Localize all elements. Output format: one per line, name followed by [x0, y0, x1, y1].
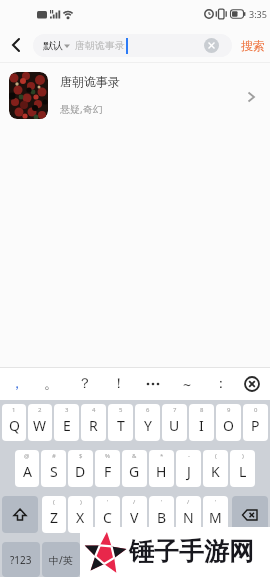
staticText: J — [187, 462, 191, 481]
staticText: % — [105, 452, 110, 460]
staticText: W — [33, 416, 47, 435]
button[interactable]: 搜索 — [241, 38, 265, 53]
staticText: 4 — [92, 406, 96, 414]
staticText: 0 — [254, 406, 258, 414]
button[interactable] — [82, 542, 228, 577]
button[interactable]: - — [176, 450, 201, 487]
staticText: $ — [79, 452, 83, 460]
button[interactable]: % — [95, 450, 120, 487]
staticText: / — [133, 498, 136, 506]
button[interactable]: 9 — [216, 404, 241, 441]
staticText: E — [63, 416, 71, 435]
staticText: U — [169, 416, 180, 435]
button[interactable] — [204, 38, 219, 53]
button[interactable]: / — [122, 496, 147, 533]
button[interactable]: ) — [230, 450, 255, 487]
staticText: O — [223, 416, 234, 435]
staticText: 唐朝诡事录 — [75, 39, 125, 52]
button[interactable]: * — [149, 450, 174, 487]
staticText: 锤子手游网 — [129, 536, 254, 567]
button[interactable]: ' — [149, 496, 174, 533]
staticText: 8 — [200, 406, 204, 414]
button[interactable]: ) — [68, 496, 93, 533]
button[interactable]: 8 — [189, 404, 214, 441]
button[interactable]: 默认 — [33, 34, 232, 57]
staticText: 唐朝诡事录 — [60, 74, 120, 89]
button[interactable]: 唐朝诡事录 — [0, 62, 270, 142]
button[interactable]: & — [122, 450, 147, 487]
button[interactable]: ？ — [68, 368, 102, 400]
button[interactable]: ： — [204, 368, 238, 400]
button[interactable] — [2, 496, 38, 533]
button[interactable]: $ — [68, 450, 93, 487]
staticText: T — [117, 416, 125, 435]
button[interactable]: 4 — [81, 404, 106, 441]
button[interactable]: 1 — [2, 404, 26, 441]
staticText: D — [75, 462, 86, 481]
staticText: 3 — [65, 406, 69, 414]
button[interactable]: @ — [15, 450, 39, 487]
button[interactable]: ！ — [102, 368, 136, 400]
staticText: M — [209, 508, 222, 527]
staticText: ？ — [78, 375, 92, 393]
button[interactable]: ~ — [170, 368, 204, 400]
staticText: X — [76, 508, 85, 527]
button[interactable] — [232, 496, 268, 533]
staticText: G — [129, 462, 140, 481]
staticText: ： — [214, 375, 228, 393]
button[interactable]: ， — [0, 368, 34, 400]
staticText: ' — [215, 498, 217, 506]
staticText: R — [89, 416, 98, 435]
button[interactable]: ( — [203, 450, 228, 487]
button[interactable] — [230, 542, 268, 577]
staticText: / — [187, 498, 190, 506]
staticText: N — [183, 508, 194, 527]
staticText: & — [132, 452, 137, 460]
staticText: ~ — [183, 375, 192, 394]
staticText: Y — [144, 416, 152, 435]
staticText: - — [188, 452, 190, 460]
button[interactable]: ' — [95, 496, 120, 533]
staticText: 。 — [44, 375, 58, 393]
staticText: K — [211, 462, 220, 481]
staticText: 6 — [146, 406, 150, 414]
staticText: V — [130, 508, 139, 527]
staticText: ?123 — [10, 553, 32, 567]
button[interactable]: 0 — [243, 404, 268, 441]
staticText: C — [103, 508, 112, 527]
staticText: 1 — [12, 406, 16, 414]
button[interactable]: / — [176, 496, 201, 533]
staticText: H — [156, 462, 167, 481]
button[interactable]: 3 — [54, 404, 79, 441]
staticText: B — [157, 508, 167, 527]
staticText: 9 — [227, 406, 231, 414]
button[interactable]: 7 — [162, 404, 187, 441]
button[interactable] — [4, 33, 28, 57]
staticText: ！ — [112, 375, 126, 393]
button[interactable]: 2 — [28, 404, 52, 441]
staticText: S — [50, 462, 58, 481]
staticText: 7 — [173, 406, 177, 414]
staticText: ， — [10, 375, 24, 393]
button[interactable]: ?123 — [2, 542, 40, 577]
staticText: Q — [9, 416, 20, 435]
button[interactable] — [244, 376, 260, 392]
staticText: 悬疑,奇幻 — [60, 102, 103, 116]
button[interactable]: 。 — [34, 368, 68, 400]
staticText: 5 — [119, 406, 123, 414]
staticText: 中/英 — [49, 553, 73, 567]
button[interactable]: 6 — [135, 404, 160, 441]
button[interactable]: ' — [203, 496, 228, 533]
button[interactable]: 中/英 — [42, 542, 80, 577]
staticText: ) — [80, 498, 82, 506]
staticText: @ — [24, 452, 30, 460]
button[interactable]: 5 — [108, 404, 133, 441]
staticText: 3:35 — [249, 8, 267, 20]
button[interactable]: ( — [42, 496, 66, 533]
staticText: ' — [107, 498, 109, 506]
button[interactable]: # — [41, 450, 66, 487]
staticText: Z — [50, 508, 59, 527]
button[interactable] — [136, 368, 170, 400]
staticText: 2 — [38, 406, 42, 414]
staticText: * — [160, 452, 164, 460]
